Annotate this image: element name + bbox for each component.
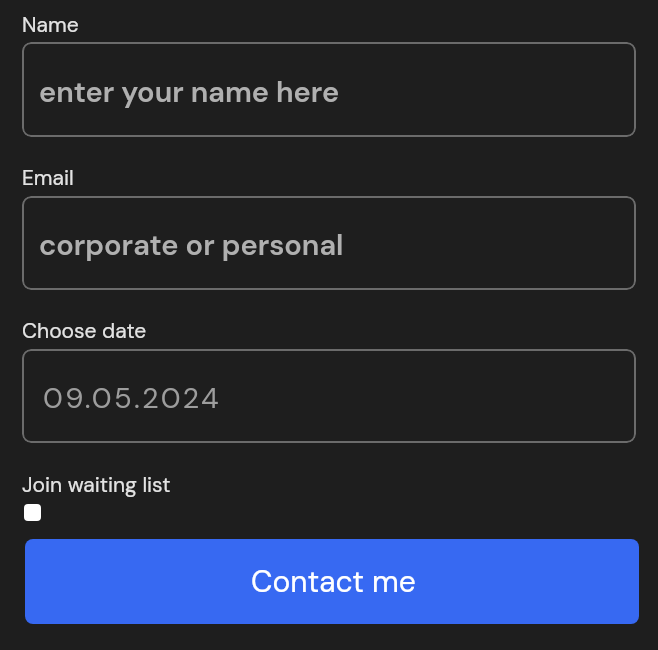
button[interactable]: enter your name here — [22, 42, 636, 137]
staticText: corporate or personal — [39, 226, 344, 264]
staticText: Choose date — [22, 317, 147, 344]
staticText: Email — [22, 164, 74, 191]
staticText: Name — [22, 11, 79, 38]
staticText: enter your name here — [39, 73, 340, 111]
staticText: Contact me — [251, 562, 416, 601]
staticText: Join waiting list — [22, 471, 171, 498]
button[interactable]: Join waiting list — [24, 504, 41, 521]
button[interactable]: Contact me — [25, 539, 639, 624]
staticText: 09.05.2024 — [43, 379, 222, 417]
button[interactable]: corporate or personal — [22, 196, 636, 290]
button[interactable]: 09.05.2024 — [22, 349, 636, 443]
